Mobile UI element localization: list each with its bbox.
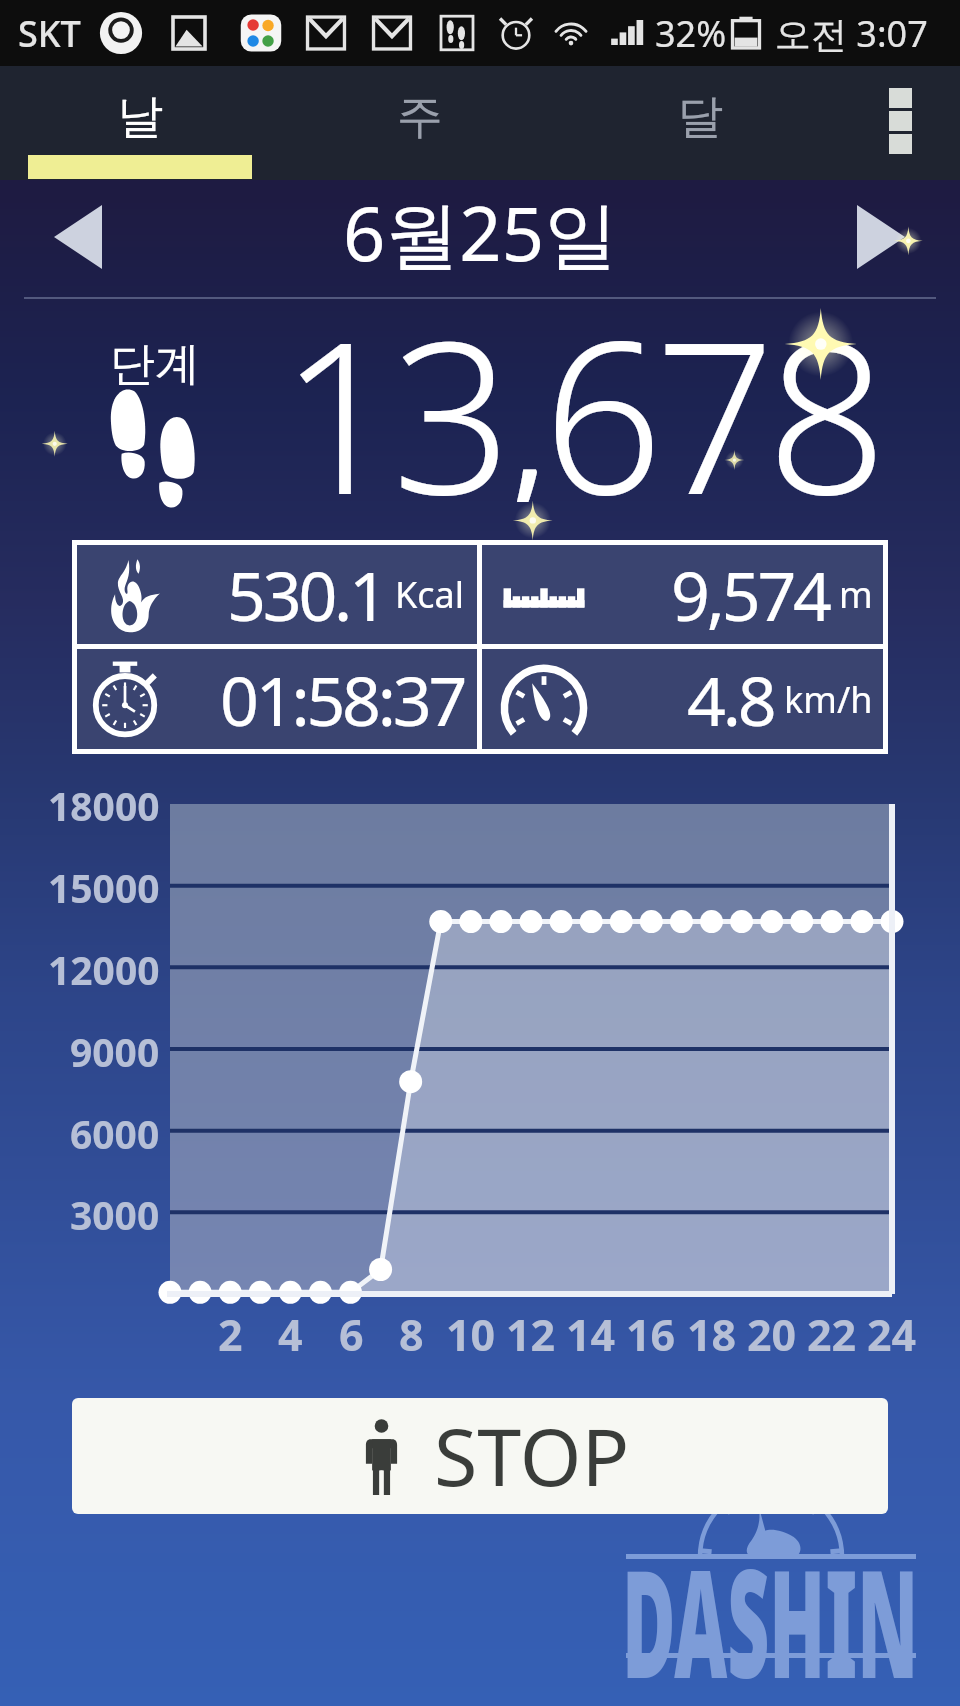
staticText: 10 bbox=[446, 1305, 496, 1364]
staticText: 4 bbox=[278, 1305, 303, 1364]
staticText: Kcal bbox=[395, 570, 465, 619]
staticText: 22 bbox=[807, 1305, 857, 1364]
staticText: 4.8 bbox=[687, 653, 774, 746]
button[interactable]: 날 bbox=[0, 66, 280, 180]
staticText: 530.1 bbox=[227, 548, 385, 641]
staticText: DASHIN bbox=[622, 1518, 918, 1706]
staticText: 32% bbox=[655, 9, 727, 58]
staticText: 9000 bbox=[70, 1025, 160, 1078]
staticText: 18000 bbox=[48, 779, 160, 832]
staticText: 13,678 bbox=[280, 270, 879, 502]
button[interactable]: 01:58:37 bbox=[77, 649, 477, 749]
button[interactable]: STOP bbox=[72, 1398, 888, 1514]
button[interactable]: Previous day bbox=[54, 205, 102, 269]
button[interactable]: 9,574 bbox=[482, 545, 883, 644]
staticText: km/h bbox=[784, 675, 873, 724]
staticText: 6000 bbox=[70, 1107, 160, 1160]
staticText: 달 bbox=[677, 88, 723, 146]
staticText: 16 bbox=[626, 1305, 676, 1364]
staticText: 주 bbox=[397, 88, 443, 146]
staticText: 3000 bbox=[70, 1188, 160, 1241]
button[interactable]: 530.1 bbox=[77, 545, 477, 644]
staticText: 15000 bbox=[48, 861, 160, 914]
staticText: 01:58:37 bbox=[220, 653, 465, 746]
staticText: 20 bbox=[747, 1305, 797, 1364]
button[interactable]: Next day bbox=[857, 205, 905, 269]
staticText: 2 bbox=[218, 1305, 243, 1364]
staticText: m bbox=[839, 570, 873, 619]
staticText: 12000 bbox=[48, 943, 160, 996]
staticText: 18 bbox=[687, 1305, 737, 1364]
staticText: 6 bbox=[339, 1305, 364, 1364]
staticText: 12 bbox=[506, 1305, 556, 1364]
button[interactable]: 4.8 bbox=[482, 649, 883, 749]
button[interactable]: More options bbox=[840, 66, 960, 180]
staticText: 6월25일 bbox=[343, 182, 618, 283]
button[interactable]: 주 bbox=[280, 66, 560, 180]
staticText: 24 bbox=[867, 1305, 917, 1364]
staticText: 14 bbox=[566, 1305, 616, 1364]
staticText: SKT bbox=[18, 9, 81, 58]
staticText: 단계 bbox=[110, 336, 200, 393]
staticText: 오전 3:07 bbox=[775, 9, 928, 58]
staticText: 9,574 bbox=[671, 548, 829, 641]
staticText: 8 bbox=[399, 1305, 424, 1364]
staticText: 날 bbox=[117, 88, 163, 146]
button[interactable]: 달 bbox=[560, 66, 840, 180]
staticText: STOP bbox=[434, 1402, 630, 1510]
